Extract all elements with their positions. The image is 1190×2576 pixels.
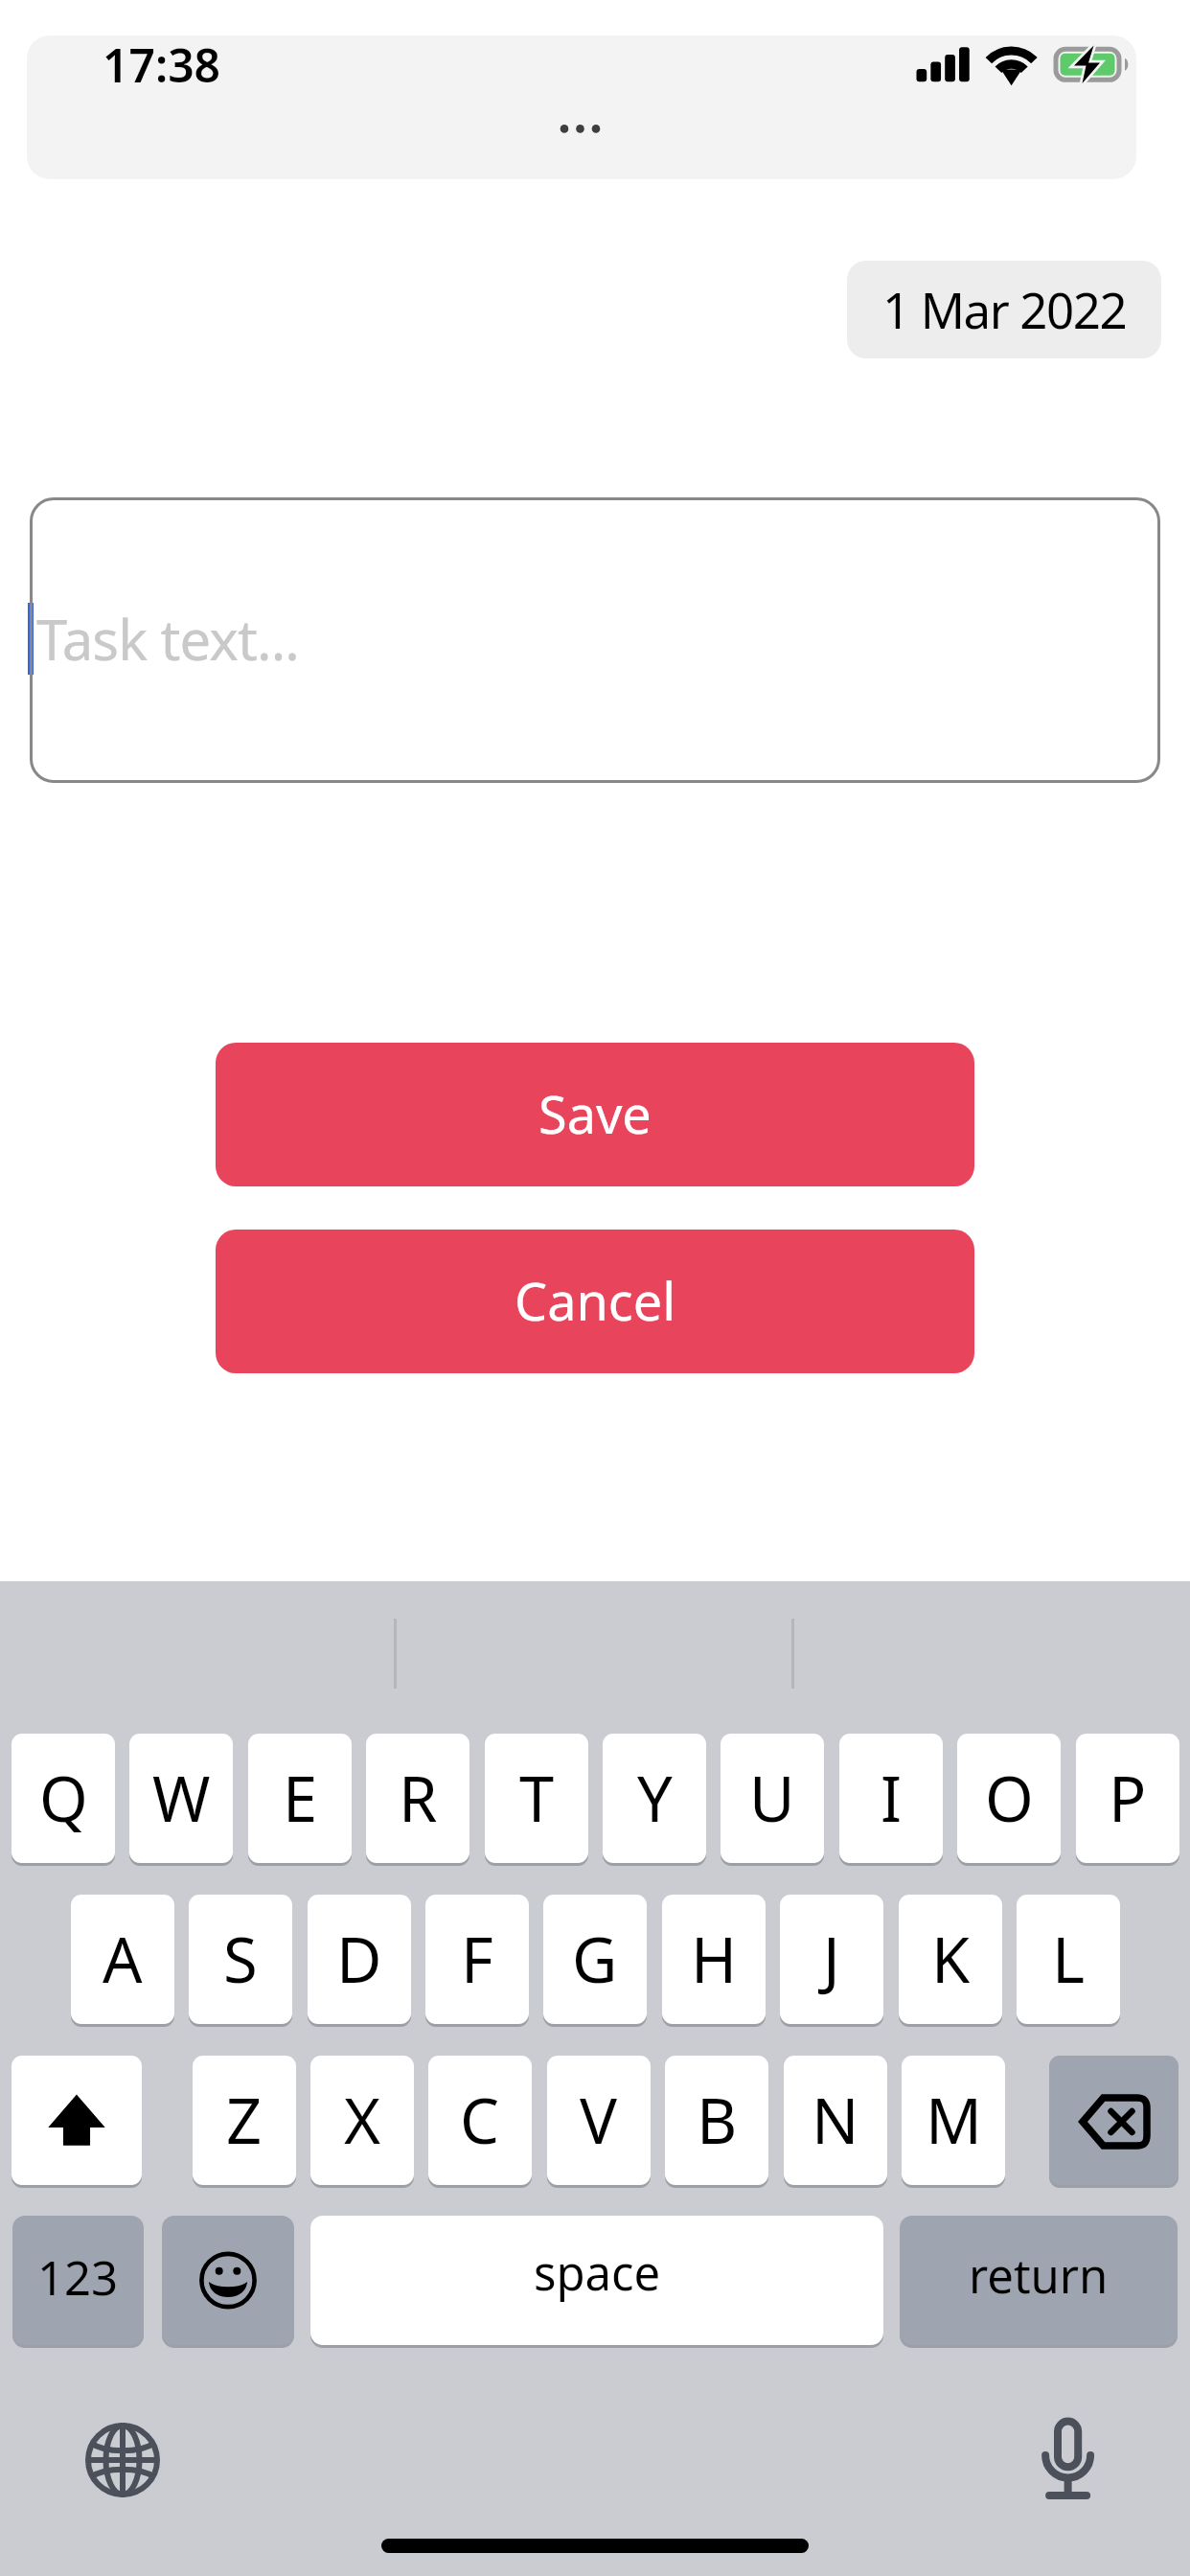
button[interactable]: T (485, 1734, 588, 1863)
button[interactable]: N (784, 2056, 887, 2185)
staticText: M (926, 2078, 982, 2163)
button[interactable]: P (1076, 1734, 1179, 1863)
staticText: K (931, 1917, 971, 2002)
button[interactable]: Cancel (216, 1230, 974, 1373)
staticText: C (460, 2078, 500, 2163)
staticText: P (1109, 1756, 1147, 1841)
button[interactable]: Z (193, 2056, 296, 2185)
button[interactable]: B (665, 2056, 768, 2185)
staticText: 1 Mar 2022 (882, 276, 1127, 342)
staticText: Y (637, 1756, 673, 1841)
staticText: Cancel (515, 1265, 676, 1336)
button[interactable]: Task text... (30, 497, 1160, 783)
staticText: T (519, 1756, 555, 1841)
button[interactable]: C (428, 2056, 532, 2185)
staticText: O (985, 1756, 1034, 1841)
staticText: R (399, 1756, 438, 1841)
button[interactable]: L (1017, 1895, 1120, 2024)
button[interactable]: V (547, 2056, 651, 2185)
staticText: Q (39, 1756, 88, 1841)
staticText: D (336, 1917, 382, 2002)
button[interactable]: I (839, 1734, 943, 1863)
button[interactable]: R (366, 1734, 469, 1863)
staticText: return (969, 2243, 1109, 2308)
staticText: Save (538, 1078, 652, 1149)
button[interactable]: J (780, 1895, 883, 2024)
staticText: Task text... (36, 601, 299, 677)
button[interactable]: D (308, 1895, 411, 2024)
staticText: J (823, 1917, 840, 2002)
staticText: G (572, 1917, 618, 2002)
staticText: S (223, 1917, 258, 2002)
button[interactable]: X (310, 2056, 414, 2185)
staticText: N (812, 2078, 859, 2163)
staticText: H (691, 1917, 738, 2002)
staticText: B (697, 2078, 738, 2163)
button[interactable]: G (543, 1895, 647, 2024)
button[interactable]: M (902, 2056, 1005, 2185)
staticText: U (749, 1756, 795, 1841)
button[interactable]: 123 (12, 2216, 144, 2345)
staticText: V (580, 2078, 618, 2163)
staticText: I (881, 1756, 903, 1841)
button[interactable]: E (248, 1734, 352, 1863)
staticText: A (103, 1917, 143, 2002)
button[interactable]: Backspace (1049, 2056, 1179, 2185)
staticText: E (283, 1756, 318, 1841)
staticText: space (534, 2241, 661, 2305)
button[interactable]: Change keyboard (77, 2414, 169, 2506)
button[interactable]: S (189, 1895, 292, 2024)
staticText: W (152, 1756, 211, 1841)
staticText: 17:38 (103, 35, 221, 96)
button[interactable]: space (310, 2216, 883, 2345)
button[interactable]: Q (11, 1734, 115, 1863)
button[interactable]: K (899, 1895, 1002, 2024)
button[interactable]: return (900, 2216, 1178, 2345)
staticText: Z (226, 2078, 263, 2163)
button[interactable]: F (425, 1895, 529, 2024)
staticText: F (461, 1917, 493, 2002)
button[interactable]: 1 Mar 2022 (847, 261, 1161, 358)
button[interactable]: Dictate (1020, 2415, 1116, 2511)
button[interactable]: U (721, 1734, 824, 1863)
button[interactable]: Y (603, 1734, 706, 1863)
button[interactable]: A (71, 1895, 174, 2024)
button[interactable]: O (957, 1734, 1061, 1863)
button[interactable]: Emoji (162, 2216, 294, 2345)
staticText: L (1052, 1917, 1086, 2002)
staticText: 123 (37, 2245, 119, 2310)
staticText: X (344, 2078, 381, 2163)
button[interactable]: Save (216, 1043, 974, 1186)
button[interactable]: Shift (11, 2056, 142, 2185)
button[interactable]: H (662, 1895, 766, 2024)
button[interactable]: W (129, 1734, 233, 1863)
